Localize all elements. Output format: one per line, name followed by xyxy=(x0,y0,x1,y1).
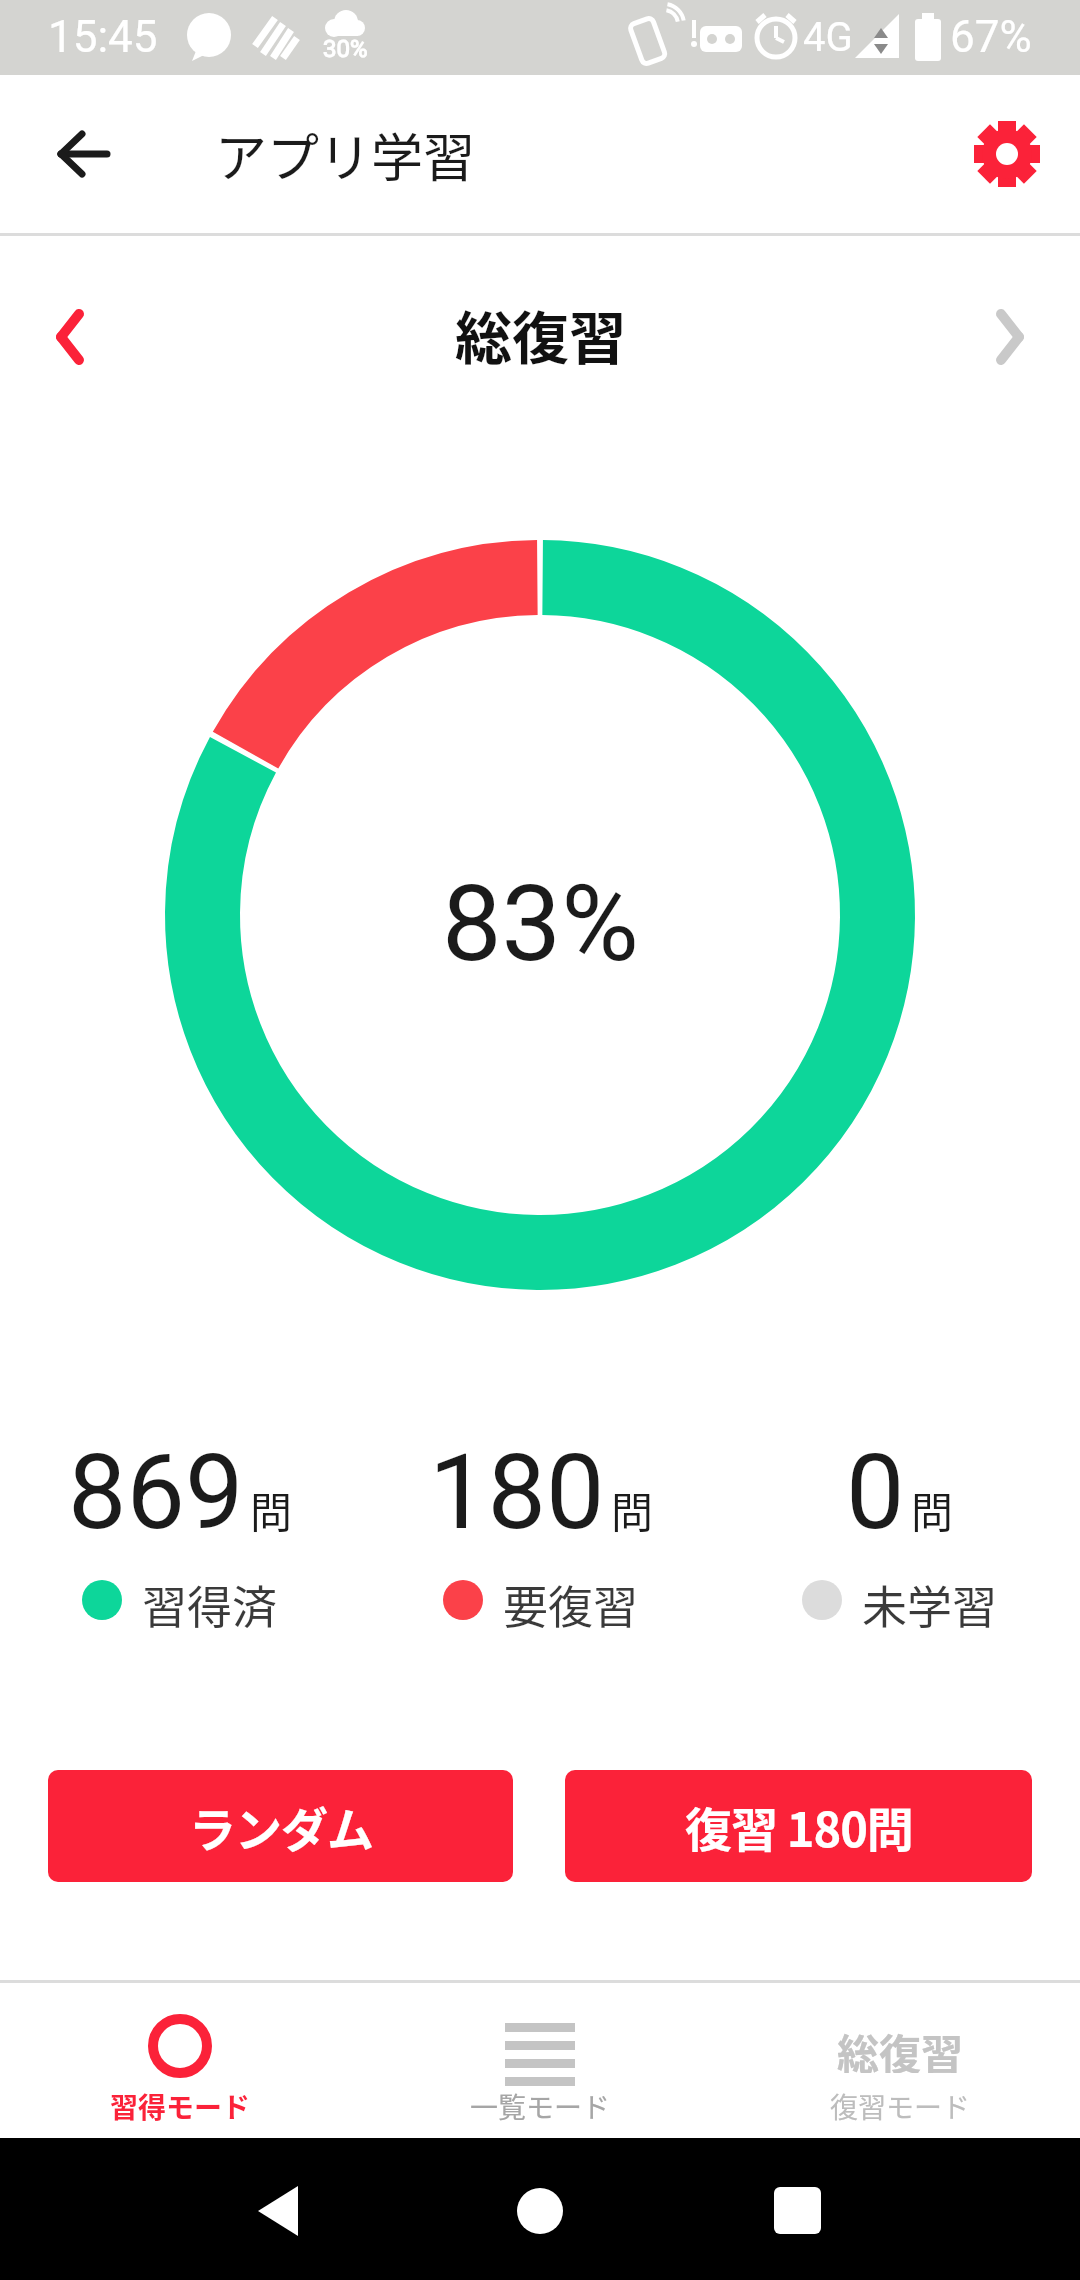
staticText: 67% xyxy=(950,11,1032,63)
staticText: アプリ学習 xyxy=(215,117,476,192)
staticText: 問 xyxy=(611,1479,654,1540)
staticText: 869 xyxy=(68,1432,244,1554)
staticText: 15:45 xyxy=(48,11,158,63)
staticText: ランダム xyxy=(189,1792,373,1860)
button[interactable]: ランダム xyxy=(48,1770,513,1882)
staticText: 0 xyxy=(846,1432,905,1554)
staticText: 30% xyxy=(323,35,368,63)
button[interactable] xyxy=(780,1988,1020,2136)
staticText: 4G xyxy=(803,14,853,61)
staticText: 総復習 xyxy=(837,2021,964,2073)
staticText: 未学習 xyxy=(862,1572,998,1628)
staticText: 83% xyxy=(442,862,639,986)
button[interactable] xyxy=(60,1988,300,2136)
staticText: 問 xyxy=(911,1479,954,1540)
staticText: 問 xyxy=(250,1479,293,1540)
button[interactable] xyxy=(970,295,1050,379)
staticText: 総復習 xyxy=(455,293,626,376)
button[interactable] xyxy=(955,102,1059,206)
button[interactable]: 復習 180問 xyxy=(565,1770,1032,1882)
staticText: 復習 180問 xyxy=(685,1792,913,1860)
staticText: 要復習 xyxy=(503,1572,639,1628)
button[interactable] xyxy=(30,295,110,379)
staticText: 180 xyxy=(429,1432,605,1554)
staticText: 習得済 xyxy=(142,1572,278,1628)
button[interactable] xyxy=(30,100,138,208)
button[interactable] xyxy=(480,2163,600,2258)
staticText: 復習モード xyxy=(830,2086,971,2127)
button[interactable] xyxy=(218,2163,338,2258)
staticText: 一覧モード xyxy=(470,2086,611,2127)
button[interactable] xyxy=(420,1988,660,2136)
button[interactable] xyxy=(737,2163,857,2258)
staticText: 習得モード xyxy=(110,2086,251,2127)
